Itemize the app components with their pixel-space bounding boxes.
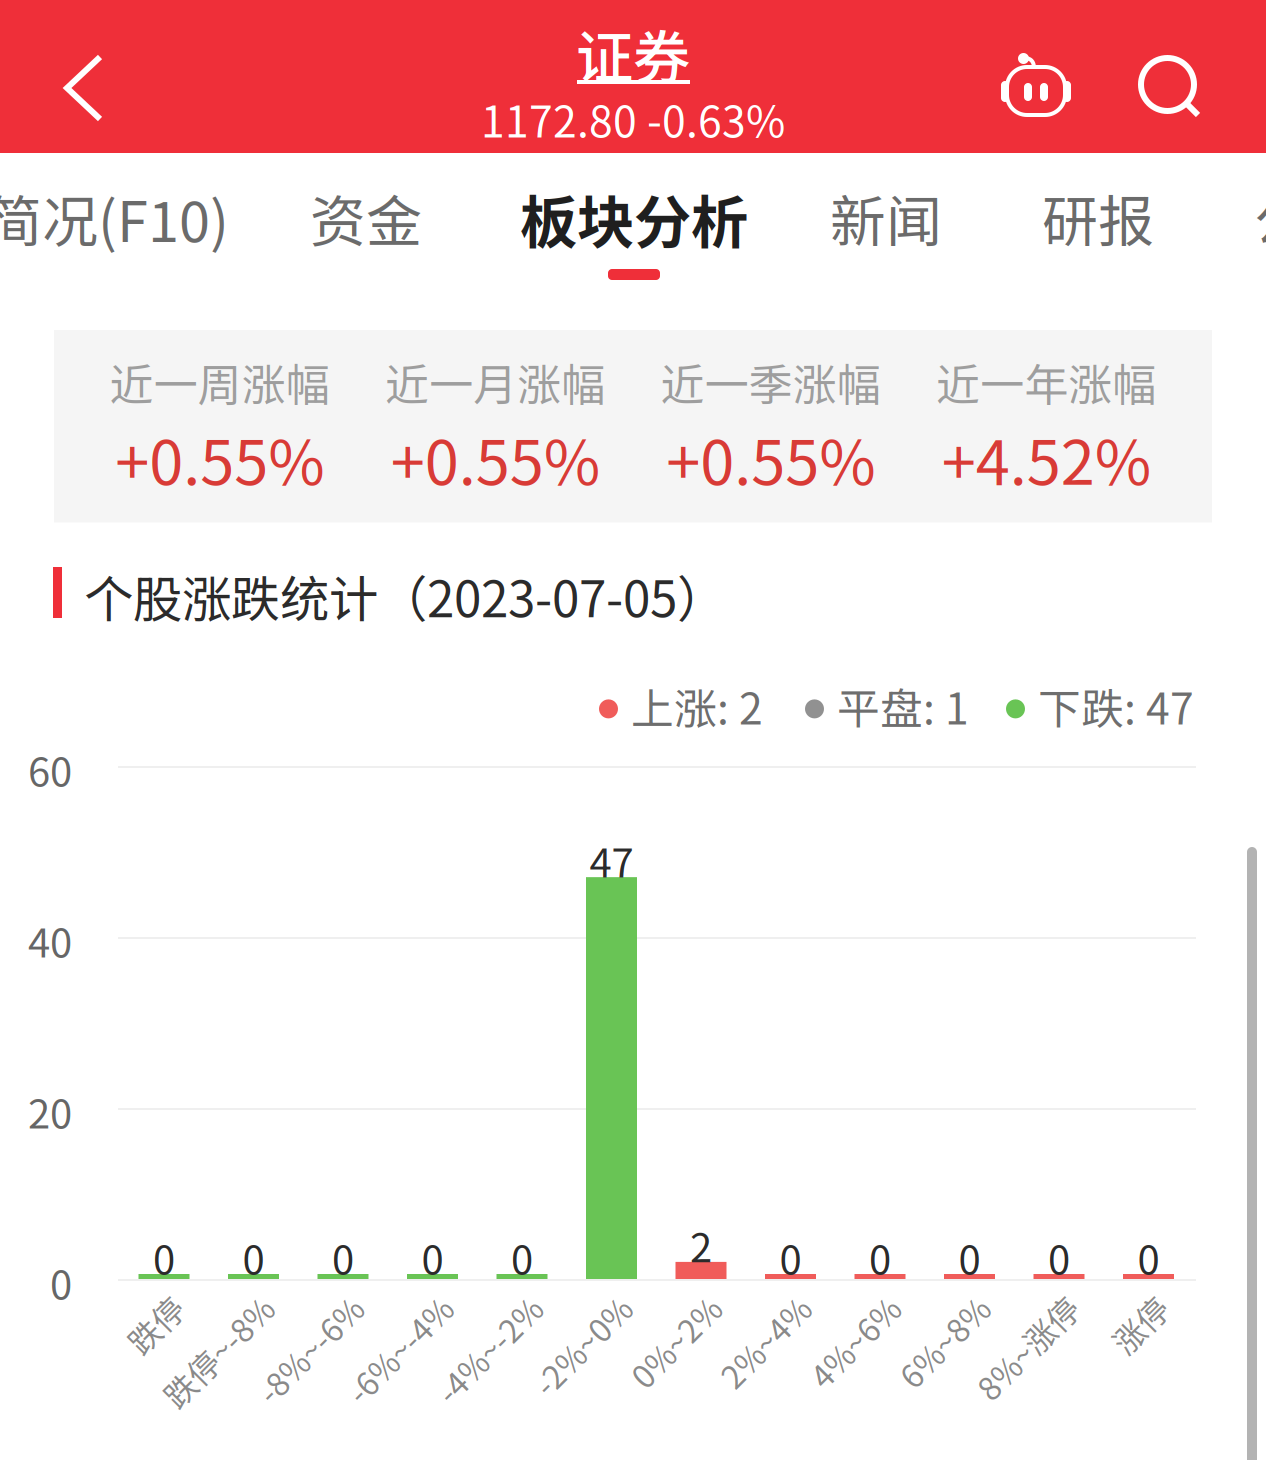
- staticText: 简况(F10): [0, 177, 229, 258]
- staticText: 0: [1137, 1228, 1159, 1286]
- staticText: 0: [779, 1228, 801, 1286]
- staticText: 平盘: 1: [837, 675, 969, 737]
- staticText: 资金: [310, 177, 422, 258]
- staticText: -4%~-2%: [402, 1279, 536, 1325]
- button[interactable]: 研报: [1038, 177, 1158, 299]
- staticText: 0: [50, 1253, 72, 1311]
- button[interactable]: 简况(F10): [0, 177, 233, 299]
- staticText: -8%~-6%: [223, 1279, 357, 1325]
- staticText: 0: [332, 1228, 354, 1286]
- staticText: +0.55%: [666, 414, 875, 502]
- staticText: +4.52%: [942, 414, 1151, 502]
- staticText: 涨停: [1098, 1279, 1162, 1325]
- staticText: 跌停: [114, 1279, 178, 1325]
- button[interactable]: Back: [50, 40, 118, 136]
- staticText: 板块分析: [520, 177, 748, 260]
- staticText: 2%~4%: [692, 1279, 804, 1325]
- button[interactable]: 板块分析: [516, 177, 752, 299]
- staticText: 20: [28, 1082, 72, 1140]
- staticText: -2%~0%: [502, 1279, 625, 1325]
- staticText: 0: [958, 1228, 980, 1286]
- staticText: 新闻: [830, 177, 942, 258]
- staticText: +0.55%: [391, 414, 600, 502]
- staticText: 下跌: 47: [1038, 675, 1194, 737]
- staticText: 公: [1254, 177, 1266, 258]
- staticText: 近一周涨幅: [110, 350, 330, 414]
- staticText: 47: [589, 831, 633, 889]
- staticText: 1172.80 -0.63%: [481, 88, 785, 150]
- button[interactable]: 新闻: [826, 177, 946, 299]
- staticText: 0: [421, 1228, 443, 1286]
- staticText: 近一年涨幅: [936, 350, 1156, 414]
- staticText: 60: [28, 740, 72, 798]
- button[interactable]: 资金: [306, 177, 426, 299]
- staticText: 研报: [1042, 177, 1154, 258]
- staticText: +0.55%: [115, 414, 324, 502]
- button[interactable]: AI assistant: [992, 43, 1080, 125]
- staticText: 近一月涨幅: [385, 350, 605, 414]
- staticText: 0: [242, 1228, 264, 1286]
- staticText: 4%~6%: [782, 1279, 894, 1325]
- staticText: 2: [690, 1216, 712, 1274]
- staticText: 证券: [576, 12, 690, 95]
- staticText: 跌停~-8%: [127, 1279, 267, 1325]
- staticText: 0%~2%: [603, 1279, 715, 1325]
- staticText: 0: [153, 1228, 175, 1286]
- staticText: 上涨: 2: [631, 675, 763, 737]
- staticText: 0: [1048, 1228, 1070, 1286]
- staticText: -6%~-4%: [312, 1279, 446, 1325]
- staticText: 40: [28, 911, 72, 969]
- staticText: 近一季涨幅: [661, 350, 881, 414]
- staticText: 8%~涨停: [944, 1279, 1073, 1325]
- staticText: 0: [511, 1228, 533, 1286]
- button[interactable]: Search: [1133, 50, 1211, 128]
- staticText: 个股涨跌统计（2023-07-05）: [84, 560, 726, 631]
- staticText: 6%~8%: [871, 1279, 983, 1325]
- staticText: 0: [869, 1228, 891, 1286]
